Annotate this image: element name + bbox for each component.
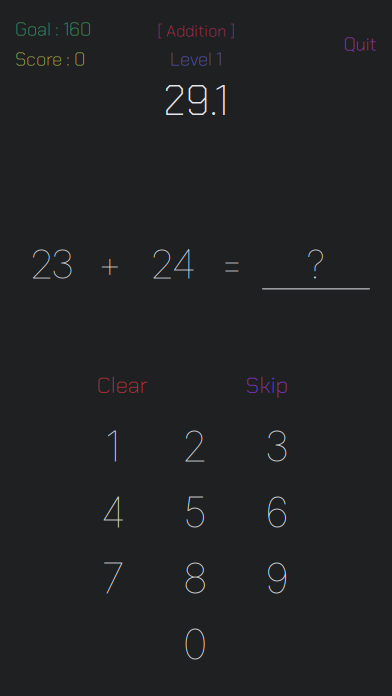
- staticText: +: [98, 241, 121, 288]
- staticText: 8: [182, 552, 207, 604]
- button[interactable]: 2: [154, 413, 236, 479]
- staticText: =: [220, 241, 243, 288]
- staticText: 5: [183, 486, 207, 538]
- staticText: 0: [182, 618, 207, 670]
- button[interactable]: 3: [236, 413, 318, 479]
- staticText: Goal : 160: [15, 17, 91, 41]
- staticText: 2: [181, 420, 208, 472]
- staticText: 4: [100, 486, 125, 538]
- button[interactable]: Clear: [74, 368, 170, 402]
- button[interactable]: 6: [236, 479, 318, 545]
- staticText: Quit: [343, 32, 376, 56]
- button[interactable]: 5: [154, 479, 236, 545]
- button[interactable]: Skip: [219, 368, 315, 402]
- staticText: 7: [101, 552, 124, 604]
- staticText: 3: [264, 420, 289, 472]
- staticText: [ Addition ]: [157, 20, 235, 42]
- button[interactable]: 9: [236, 545, 318, 611]
- button[interactable]: 0: [154, 611, 236, 677]
- staticText: 29.1: [163, 74, 228, 128]
- staticText: Score : 0: [15, 47, 85, 71]
- staticText: Level 1: [170, 47, 222, 71]
- staticText: 1: [105, 420, 121, 472]
- button[interactable]: 1: [72, 413, 154, 479]
- button[interactable]: 4: [72, 479, 154, 545]
- staticText: 9: [265, 552, 289, 604]
- button[interactable]: 7: [72, 545, 154, 611]
- staticText: Skip: [245, 370, 288, 400]
- staticText: 23: [31, 241, 73, 288]
- staticText: 6: [265, 486, 289, 538]
- staticText: Clear: [96, 370, 147, 400]
- staticText: ?: [307, 241, 325, 288]
- button[interactable]: 8: [154, 545, 236, 611]
- button[interactable]: Quit: [328, 29, 392, 59]
- staticText: 24: [151, 241, 194, 288]
